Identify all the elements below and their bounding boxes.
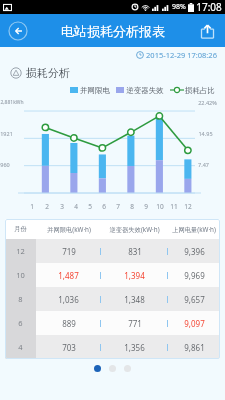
staticText: 12 xyxy=(184,202,192,211)
staticText: 4 xyxy=(74,202,78,211)
staticText: 电站损耗分析报表 xyxy=(61,23,165,39)
staticText: 98% xyxy=(172,2,186,12)
staticText: 上网电量(kW·h) xyxy=(172,225,216,234)
staticText: 8 xyxy=(130,202,134,211)
staticText: 8 xyxy=(18,294,23,304)
staticText: 7 xyxy=(116,202,120,211)
staticText: 771 xyxy=(128,318,142,329)
staticText: 703 xyxy=(62,342,76,353)
staticText: 6 xyxy=(18,318,23,328)
staticText: 10 xyxy=(16,270,25,280)
staticText: 1,036 xyxy=(58,294,79,305)
staticText: 960 xyxy=(0,161,10,168)
staticText: 6 xyxy=(102,202,106,211)
staticText: 并网限电 xyxy=(80,86,110,95)
staticText: 14.95 xyxy=(198,130,213,137)
staticText: 3 xyxy=(60,202,64,211)
staticText: 889 xyxy=(62,318,76,329)
staticText: 逆变器失效 xyxy=(126,86,164,95)
staticText: 4 xyxy=(18,342,23,352)
staticText: 7.47 xyxy=(198,161,209,168)
staticText: 2015-12-29 17:08:26 xyxy=(146,50,217,60)
staticText: 831 xyxy=(128,246,142,257)
staticText: 2 xyxy=(45,202,49,211)
staticText: 9,097 xyxy=(184,318,205,329)
button[interactable]: Page 3 xyxy=(124,365,131,372)
button[interactable]: 12 xyxy=(5,239,220,263)
staticText: 9,396 xyxy=(184,246,205,257)
staticText: 9,861 xyxy=(184,342,205,353)
button[interactable]: 8 xyxy=(5,287,220,311)
staticText: 1,394 xyxy=(124,270,145,281)
staticText: 719 xyxy=(62,246,76,257)
staticText: 月份 xyxy=(14,225,27,233)
staticText: 1,348 xyxy=(124,294,145,305)
button[interactable]: Page 1 xyxy=(94,365,101,372)
staticText: 9,657 xyxy=(184,294,205,305)
staticText: 10 xyxy=(156,202,164,211)
button[interactable]: 6 xyxy=(5,311,220,335)
staticText: 1921 xyxy=(0,130,13,137)
staticText: 1,487 xyxy=(58,270,79,281)
staticText: 17:08 xyxy=(196,0,222,14)
button[interactable]: 10 xyxy=(5,263,220,287)
staticText: 5 xyxy=(88,202,92,211)
staticText: 22.42% xyxy=(198,99,217,106)
staticText: 12 xyxy=(16,246,25,256)
staticText: 并网限电(kW·h) xyxy=(47,225,91,234)
staticText: 9 xyxy=(144,202,148,211)
staticText: 9,969 xyxy=(184,270,205,281)
staticText: 1,356 xyxy=(124,342,145,353)
staticText: 损耗分析 xyxy=(26,66,70,80)
button[interactable]: Share xyxy=(196,20,218,42)
staticText: 逆变器失效(kW·h) xyxy=(109,225,160,234)
staticText: 2,881kWh xyxy=(0,99,24,106)
staticText: 损耗占比 xyxy=(185,86,215,95)
staticText: 1 xyxy=(30,202,34,211)
button[interactable]: 4 xyxy=(5,335,220,359)
button[interactable]: Back xyxy=(6,19,30,43)
button[interactable]: Page 2 xyxy=(109,365,116,372)
staticText: 11 xyxy=(170,202,178,211)
